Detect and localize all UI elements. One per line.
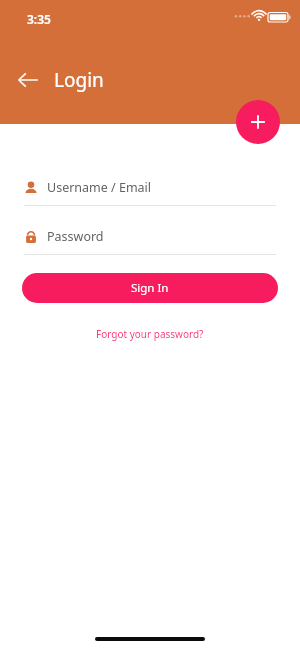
button[interactable]: Username / Email [24,179,276,206]
staticText: Forgot your password? [96,327,204,341]
staticText: Password [47,228,104,245]
button[interactable]: Password [24,228,276,255]
button[interactable]: Sign In [22,273,278,303]
staticText: Sign In [131,280,169,296]
staticText: Username / Email [47,179,152,196]
button[interactable]: Add [236,100,280,144]
staticText: Login [54,67,104,93]
button[interactable]: Back [10,62,46,98]
staticText: 3:35 [27,11,51,27]
button[interactable]: Forgot your password? [96,327,204,341]
